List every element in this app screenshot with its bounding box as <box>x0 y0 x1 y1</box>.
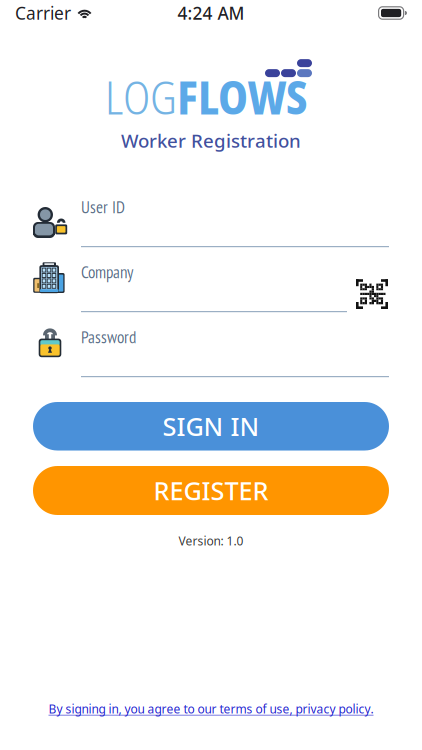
staticText: By signing in, you agree to our terms of… <box>48 701 373 717</box>
staticText: User ID <box>81 196 125 218</box>
staticText: Carrier <box>15 1 71 24</box>
staticText: FLOWS <box>177 66 308 128</box>
staticText: Company <box>81 261 133 283</box>
staticText: Worker Registration <box>121 128 301 153</box>
staticText: LOG <box>105 66 177 128</box>
button[interactable]: REGISTER <box>33 466 389 515</box>
button[interactable]: By signing in, you agree to our terms of… <box>0 701 422 717</box>
staticText: 4:24 AM <box>177 1 244 24</box>
staticText: SIGN IN <box>162 409 259 443</box>
staticText: REGISTER <box>153 474 268 507</box>
staticText: Password <box>81 326 136 348</box>
staticText: Version: 1.0 <box>178 533 243 549</box>
button[interactable]: SIGN IN <box>33 402 389 450</box>
